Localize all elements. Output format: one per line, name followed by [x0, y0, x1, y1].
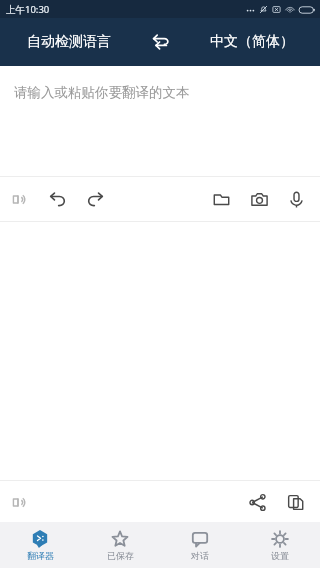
- button[interactable]: 请输入或粘贴你要翻译的文本: [0, 66, 320, 176]
- staticText: 对话: [191, 550, 209, 561]
- staticText: 请输入或粘贴你要翻译的文本: [14, 84, 190, 101]
- button[interactable]: 自动检测语言: [0, 18, 137, 66]
- button[interactable]: 中文（简体）: [183, 18, 320, 66]
- button[interactable]: Speak translation: [0, 482, 38, 522]
- button[interactable]: Camera: [240, 179, 278, 219]
- button[interactable]: Redo: [76, 179, 114, 219]
- staticText: 自动检测语言: [27, 33, 111, 51]
- staticText: 上午10:30: [6, 3, 50, 16]
- button[interactable]: Copy: [276, 482, 314, 522]
- button[interactable]: 设置: [240, 522, 320, 568]
- button[interactable]: Microphone: [278, 179, 314, 219]
- button[interactable]: 对话: [160, 522, 240, 568]
- staticText: 设置: [271, 550, 289, 561]
- button[interactable]: Documents: [202, 179, 240, 219]
- button[interactable]: 翻译器: [0, 522, 80, 568]
- button[interactable]: 已保存: [80, 522, 160, 568]
- staticText: 已保存: [107, 550, 134, 561]
- button[interactable]: Share: [238, 482, 276, 522]
- button[interactable]: Undo: [38, 179, 76, 219]
- button[interactable]: Speak: [0, 179, 38, 219]
- button[interactable]: Swap languages: [137, 18, 183, 66]
- staticText: 翻译器: [27, 550, 54, 561]
- staticText: 中文（简体）: [210, 33, 294, 51]
